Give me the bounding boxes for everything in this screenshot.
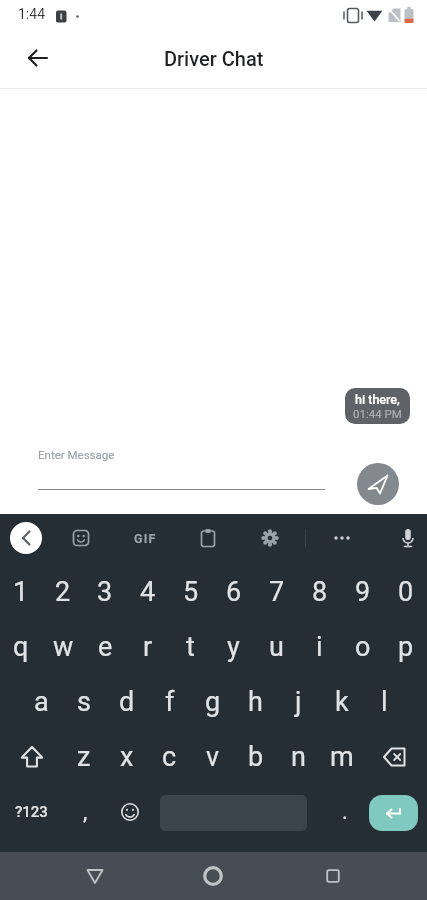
button[interactable]: y [212,619,255,674]
staticText: . [342,799,348,825]
button[interactable] [258,526,282,550]
staticText: 0 [398,576,414,608]
button[interactable] [0,729,63,784]
button[interactable]: GIF [125,514,165,562]
button[interactable]: 2 [42,564,84,619]
staticText: Enter Message [38,448,115,461]
staticText: a [34,686,49,718]
staticText: i [316,631,323,663]
staticText: l [381,686,388,718]
button[interactable] [10,522,42,554]
staticText: 2 [55,576,71,608]
button[interactable] [363,729,427,784]
button[interactable]: d [105,674,148,729]
staticText: g [205,686,221,718]
staticText: 3 [97,576,113,608]
staticText: b [248,741,264,773]
button[interactable]: h [234,674,277,729]
staticText: 1:44 [18,6,45,22]
button[interactable]: k [320,674,363,729]
button[interactable]: a [20,674,62,729]
staticText: 4 [140,576,156,608]
button[interactable]: 0 [384,564,427,619]
staticText: n [291,741,306,773]
button[interactable] [196,526,220,550]
staticText: j [295,686,302,718]
staticText: 01:44 PM [353,407,402,420]
button[interactable]: t [169,619,212,674]
button[interactable]: p [384,619,427,674]
button[interactable]: w [42,619,84,674]
button[interactable]: . [330,784,360,839]
staticText: 6 [226,576,242,608]
staticText: k [335,686,349,718]
button[interactable]: s [62,674,105,729]
button[interactable]: f [148,674,191,729]
button[interactable]: c [148,729,191,784]
button[interactable] [357,463,399,505]
button[interactable]: 9 [341,564,384,619]
button[interactable]: , [70,784,100,839]
button[interactable]: 6 [212,564,255,619]
button[interactable]: e [84,619,126,674]
button[interactable] [115,784,145,839]
staticText: hi there, [355,392,400,407]
button[interactable]: n [277,729,320,784]
button[interactable]: q [0,619,42,674]
button[interactable]: j [277,674,320,729]
button[interactable] [71,852,119,900]
staticText: r [143,631,153,663]
staticText: Driver Chat [164,47,264,70]
button[interactable] [309,852,357,900]
button[interactable]: b [234,729,277,784]
button[interactable]: 8 [298,564,341,619]
staticText: ?123 [15,803,48,821]
staticText: q [13,631,29,663]
button[interactable] [330,526,354,550]
staticText: 9 [355,576,371,608]
staticText: 7 [269,576,285,608]
staticText: p [398,631,414,663]
staticText: m [330,741,354,773]
button[interactable] [189,852,237,900]
button[interactable]: i [298,619,341,674]
staticText: d [119,686,135,718]
staticText: e [98,631,113,663]
button[interactable] [369,795,418,831]
button[interactable]: 5 [169,564,212,619]
button[interactable] [396,526,420,550]
staticText: 5 [183,576,199,608]
button[interactable] [69,526,93,550]
button[interactable]: ?123 [6,784,56,839]
staticText: x [120,741,134,773]
staticText: y [227,631,240,663]
staticText: t [186,631,195,663]
button[interactable]: 7 [255,564,298,619]
button[interactable]: v [191,729,234,784]
button[interactable]: hi there, [353,392,402,420]
staticText: c [162,741,177,773]
staticText: f [165,686,175,718]
button[interactable]: z [63,729,105,784]
staticText: h [248,686,263,718]
button[interactable]: 1 [0,564,42,619]
staticText: GIF [134,531,157,546]
button[interactable]: 4 [126,564,169,619]
staticText: 1 [13,576,29,608]
button[interactable]: m [320,729,363,784]
staticText: , [83,799,88,825]
button[interactable]: 3 [84,564,126,619]
button[interactable] [14,34,62,82]
button[interactable]: x [105,729,148,784]
staticText: v [206,741,220,773]
button[interactable]: l [363,674,406,729]
staticText: 8 [312,576,328,608]
button[interactable]: u [255,619,298,674]
button[interactable]: o [341,619,384,674]
button[interactable]: r [126,619,169,674]
staticText: u [269,631,284,663]
staticText: o [355,631,371,663]
button[interactable]: g [191,674,234,729]
staticText: w [53,631,74,663]
